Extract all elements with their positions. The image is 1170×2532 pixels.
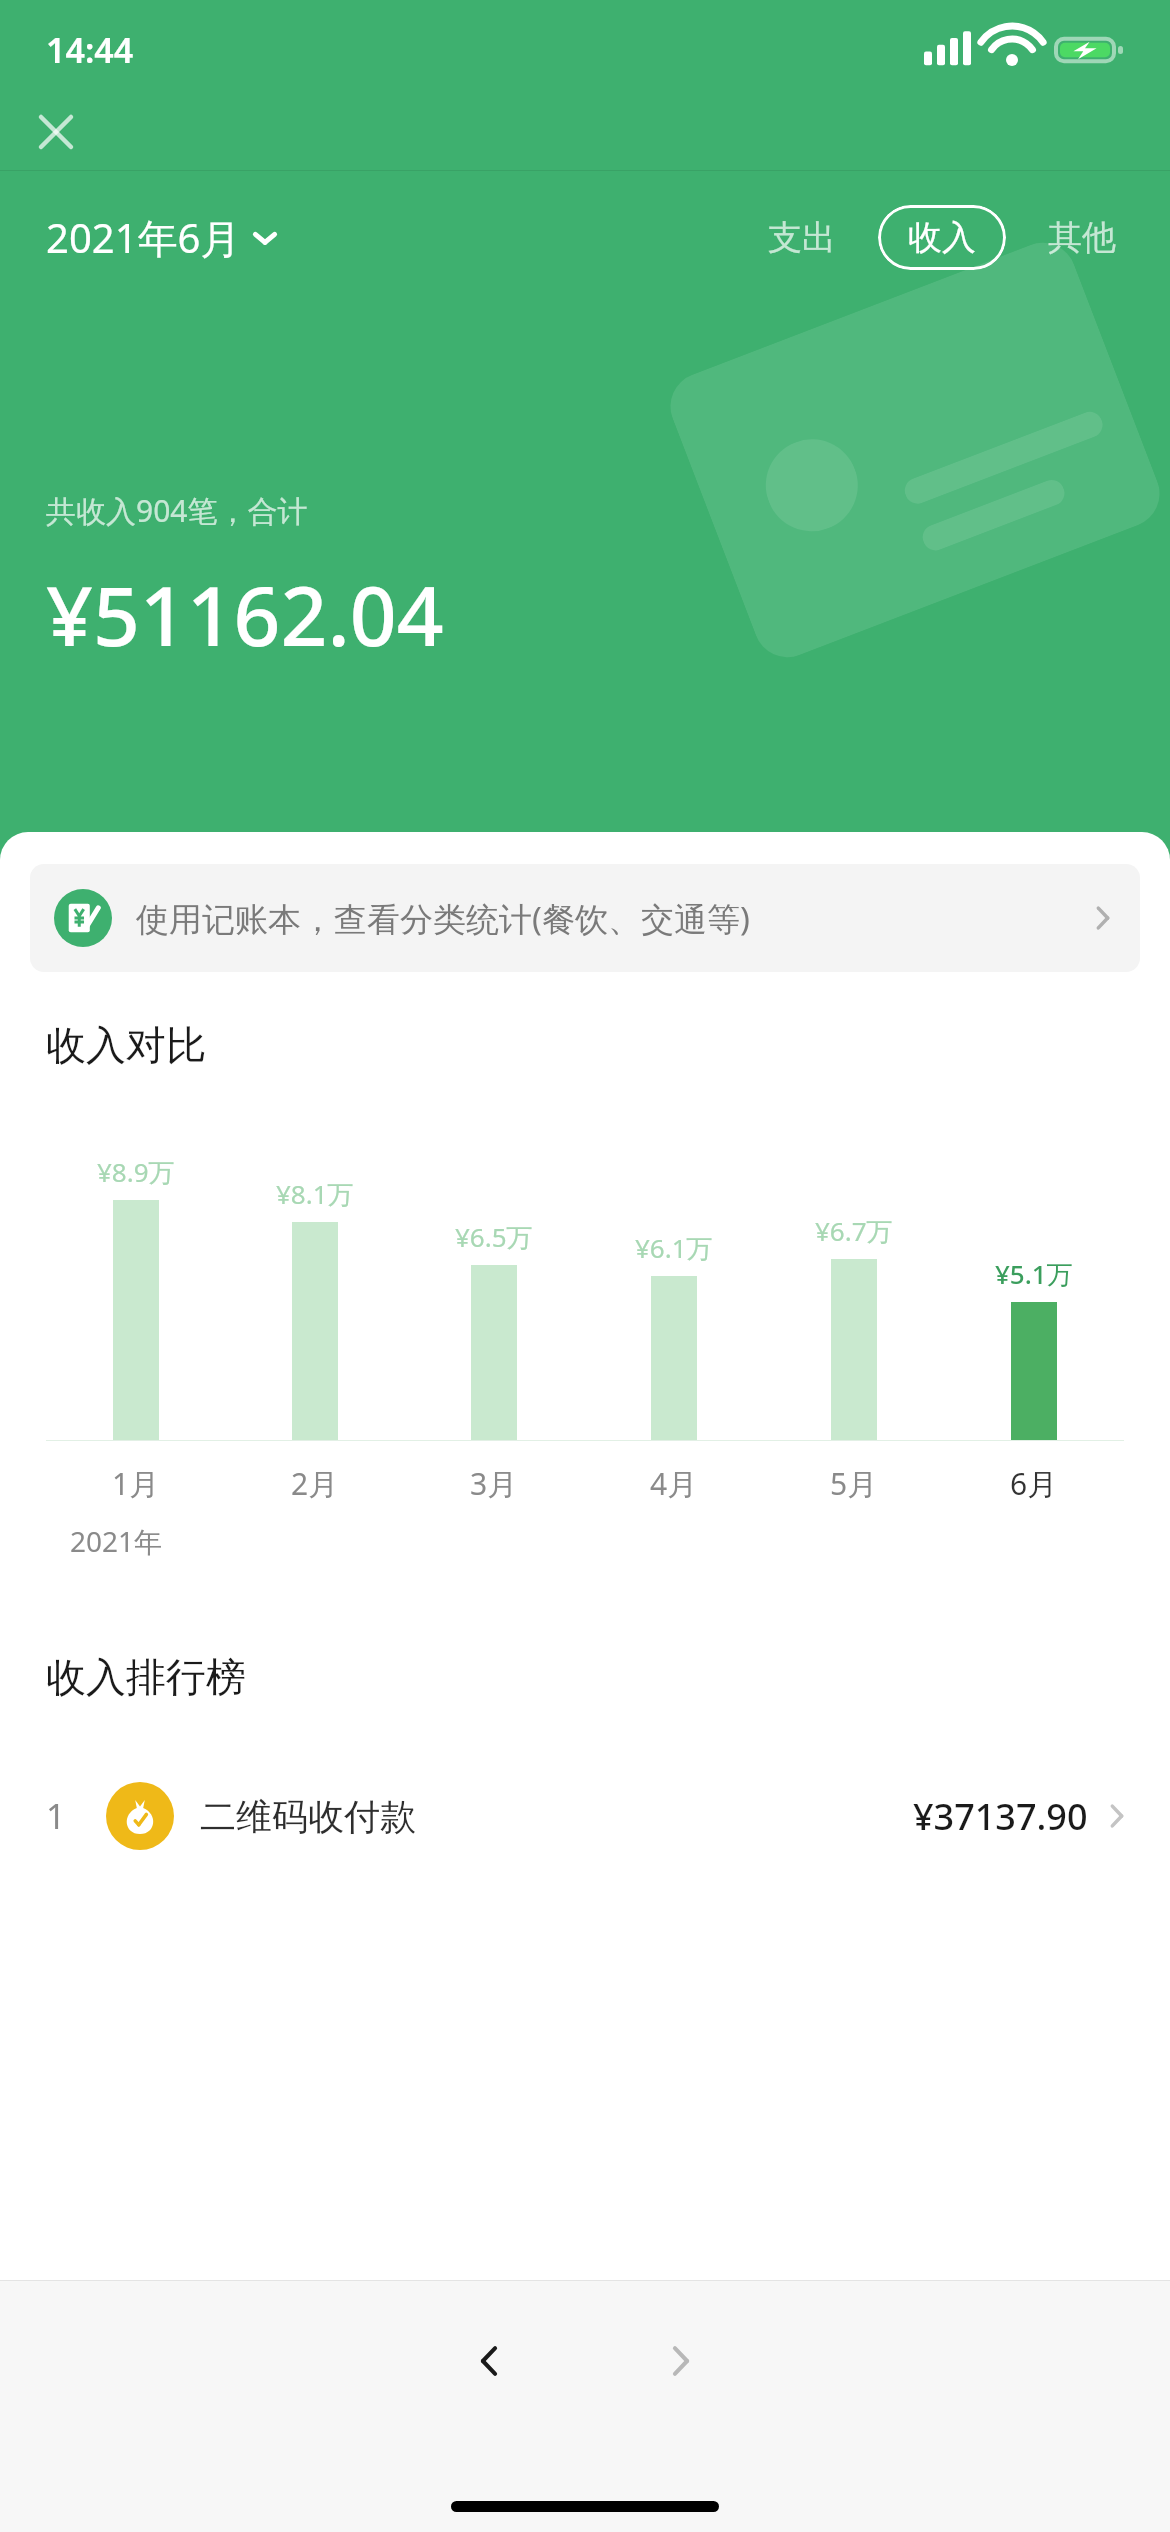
staticText: ¥8.9万 xyxy=(97,1154,175,1190)
staticText: 2月 xyxy=(291,1463,339,1504)
staticText: 2021年6月 xyxy=(46,210,241,265)
staticText: ¥6.1万 xyxy=(635,1230,713,1266)
staticText: 收入排行榜 xyxy=(46,1652,246,1702)
staticText: 支出 xyxy=(768,216,836,259)
staticText: ¥6.7万 xyxy=(815,1213,893,1249)
button[interactable]: Close xyxy=(20,96,92,168)
staticText: ¥8.1万 xyxy=(276,1176,354,1212)
button[interactable]: 使用记账本，查看分类统计(餐饮、交通等) xyxy=(30,864,1140,972)
staticText: 使用记账本，查看分类统计(餐饮、交通等) xyxy=(136,896,750,941)
button[interactable]: 其他 xyxy=(1034,208,1130,267)
staticText: 其他 xyxy=(1048,216,1116,259)
staticText: ¥37137.90 xyxy=(913,1792,1088,1841)
staticText: 共收入904笔，合计 xyxy=(46,490,308,531)
button[interactable]: 收入 xyxy=(878,205,1006,270)
button[interactable]: 1 xyxy=(0,1756,1170,1876)
staticText: 6月 xyxy=(1010,1463,1058,1504)
staticText: 4月 xyxy=(650,1463,698,1504)
staticText: 二维码收付款 xyxy=(200,1794,416,1839)
staticText: 2021年 xyxy=(70,1522,163,1560)
staticText: 1月 xyxy=(112,1463,160,1504)
staticText: 14:44 xyxy=(46,27,134,73)
button[interactable]: 支出 xyxy=(754,208,850,267)
staticText: 收入对比 xyxy=(46,1020,206,1070)
staticText: ¥5.1万 xyxy=(995,1256,1073,1292)
staticText: 5月 xyxy=(830,1463,878,1504)
staticText: 收入 xyxy=(908,216,976,259)
button[interactable]: 2021年6月 xyxy=(46,210,277,265)
staticText: ¥51162.04 xyxy=(46,558,444,670)
button[interactable]: Forward xyxy=(626,2306,736,2416)
staticText: 3月 xyxy=(470,1463,518,1504)
button[interactable]: Back xyxy=(434,2306,544,2416)
staticText: 1 xyxy=(46,1793,106,1839)
staticText: ¥6.5万 xyxy=(455,1219,533,1255)
